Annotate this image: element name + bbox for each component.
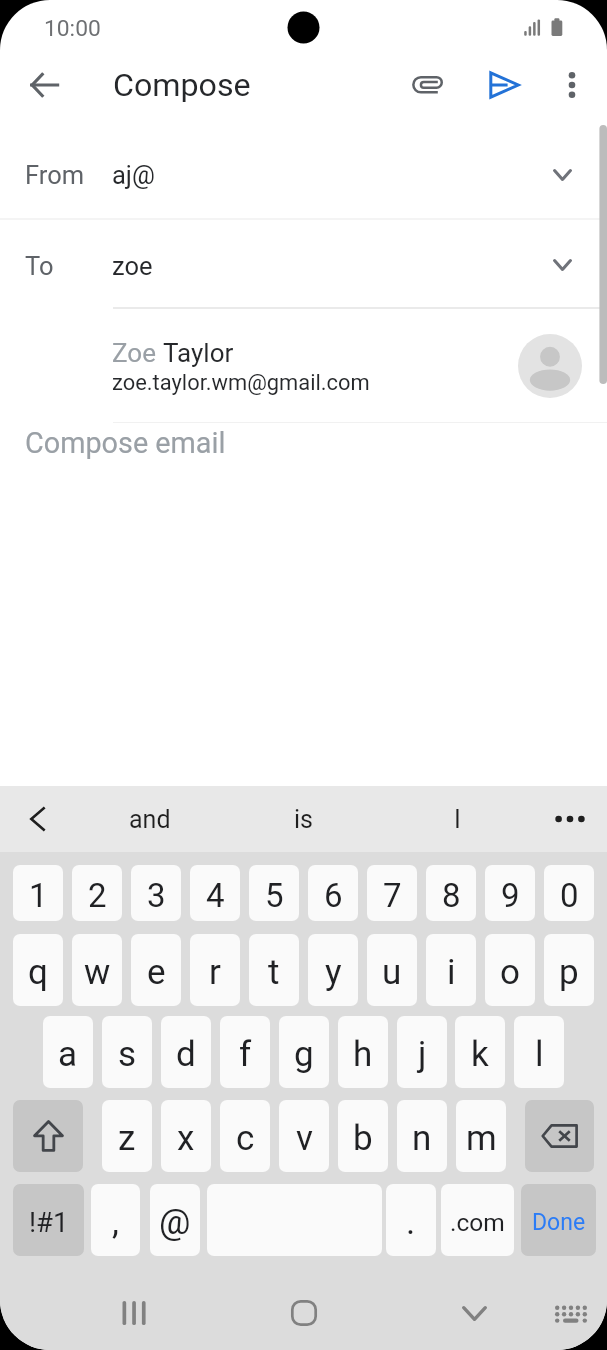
button[interactable]: and [95, 786, 205, 852]
staticText: 10:00 [44, 15, 101, 42]
staticText: 2 [88, 876, 107, 915]
staticText: u [382, 952, 402, 993]
staticText: j [418, 1034, 427, 1075]
button[interactable]: j [397, 1016, 447, 1088]
button[interactable]: w [72, 934, 122, 1006]
staticText: r [209, 952, 221, 993]
staticText: y [325, 952, 342, 993]
staticText: s [118, 1034, 137, 1075]
staticText: To [25, 251, 54, 281]
button[interactable]: x [161, 1100, 211, 1172]
button[interactable]: 1 [13, 865, 63, 921]
button[interactable]: m [456, 1100, 506, 1172]
button[interactable]: Home [280, 1289, 328, 1337]
button[interactable]: u [367, 934, 417, 1006]
button[interactable]: Symbols [13, 1184, 84, 1256]
button[interactable]: a [43, 1016, 93, 1088]
staticText: t [268, 952, 280, 993]
staticText: i [447, 952, 456, 993]
button[interactable]: t [249, 934, 299, 1006]
button[interactable]: Back [20, 61, 68, 109]
button[interactable]: f [220, 1016, 270, 1088]
button[interactable]: More suggestions [548, 797, 592, 841]
staticText: h [353, 1034, 373, 1075]
button[interactable]: h [338, 1016, 388, 1088]
button[interactable]: Previous suggestions [15, 797, 59, 841]
staticText: q [28, 952, 48, 993]
button[interactable]: @ [150, 1184, 200, 1256]
staticText: a [58, 1034, 78, 1075]
button[interactable]: p [544, 934, 594, 1006]
button[interactable]: 8 [426, 865, 476, 921]
staticText: !#1 [29, 1206, 69, 1238]
button[interactable]: Shift [13, 1100, 83, 1172]
button[interactable]: z [102, 1100, 152, 1172]
button[interactable]: 2 [72, 865, 122, 921]
button[interactable]: 3 [131, 865, 181, 921]
button[interactable]: To [0, 219, 607, 308]
staticText: n [412, 1118, 432, 1159]
button[interactable]: 5 [249, 865, 299, 921]
button[interactable]: g [279, 1016, 329, 1088]
staticText: w [84, 952, 111, 993]
button[interactable]: From [0, 116, 607, 219]
button[interactable]: I [402, 786, 512, 852]
button[interactable]: 4 [190, 865, 240, 921]
staticText: o [500, 952, 520, 993]
button[interactable]: e [131, 934, 181, 1006]
button[interactable]: , [91, 1184, 140, 1256]
button[interactable]: c [220, 1100, 270, 1172]
button[interactable]: 7 [367, 865, 417, 921]
button[interactable]: 9 [485, 865, 535, 921]
button[interactable]: Done [521, 1184, 596, 1256]
staticText: 3 [147, 876, 166, 915]
button[interactable]: . [386, 1184, 436, 1256]
button[interactable]: r [190, 934, 240, 1006]
button[interactable]: Change keyboard [545, 1289, 593, 1337]
button[interactable]: o [485, 934, 535, 1006]
staticText: f [239, 1034, 252, 1075]
staticText: 5 [265, 876, 284, 915]
staticText: zoe [112, 251, 153, 281]
button[interactable]: l [514, 1016, 564, 1088]
button[interactable]: Send [480, 61, 528, 109]
button[interactable]: Zoe [0, 308, 607, 408]
button[interactable]: q [13, 934, 63, 1006]
button[interactable]: y [308, 934, 358, 1006]
button[interactable]: More options [548, 61, 596, 109]
staticText: 1 [29, 876, 48, 915]
button[interactable]: Hide keyboard [450, 1289, 498, 1337]
staticText: aj@ [112, 160, 155, 190]
staticText: k [471, 1034, 489, 1075]
button[interactable]: Backspace [525, 1100, 594, 1172]
staticText: Done [532, 1209, 586, 1236]
staticText: p [559, 952, 579, 993]
button[interactable]: Recent apps [110, 1289, 158, 1337]
button[interactable]: s [102, 1016, 152, 1088]
button[interactable]: 6 [308, 865, 358, 921]
button[interactable]: v [279, 1100, 329, 1172]
staticText: I [454, 805, 461, 834]
button[interactable]: Attach file [404, 61, 452, 109]
staticText: .com [450, 1208, 505, 1237]
staticText: and [129, 805, 171, 834]
staticText: zoe.taylor.wm@gmail.com [112, 370, 370, 396]
staticText: , [112, 1202, 119, 1243]
button[interactable]: Compose email [0, 408, 607, 778]
button[interactable]: 0 [544, 865, 594, 921]
staticText: b [353, 1118, 373, 1159]
button[interactable]: d [161, 1016, 211, 1088]
staticText: 9 [501, 876, 520, 915]
button[interactable]: i [426, 934, 476, 1006]
staticText: 4 [206, 876, 225, 915]
staticText: z [118, 1118, 136, 1159]
staticText: l [535, 1034, 544, 1075]
button[interactable]: k [455, 1016, 505, 1088]
staticText: 7 [383, 876, 402, 915]
button[interactable]: n [397, 1100, 447, 1172]
button[interactable]: .com [441, 1184, 514, 1256]
button[interactable]: is [248, 786, 358, 852]
button[interactable]: b [338, 1100, 388, 1172]
staticText: Taylor [163, 338, 234, 368]
